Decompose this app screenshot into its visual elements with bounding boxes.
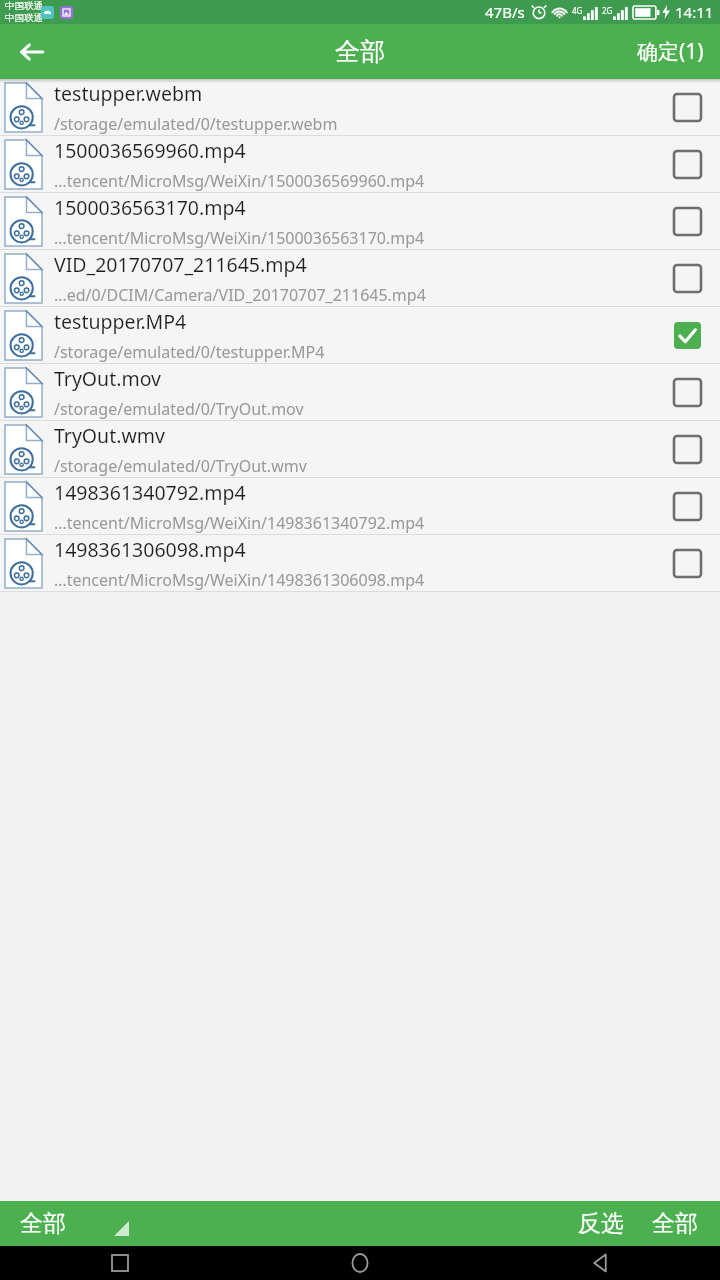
button[interactable]: 1498361306098.mp4	[0, 535, 720, 592]
button[interactable]: Not selected	[670, 375, 704, 409]
staticText: …tencent/MicroMsg/WeiXin/1498361340792.m…	[54, 512, 662, 534]
button[interactable]: testupper.webm	[0, 79, 720, 136]
button[interactable]: Back	[480, 1246, 720, 1280]
staticText: /storage/emulated/0/testupper.webm	[54, 113, 662, 135]
staticText: 反选	[578, 1209, 624, 1238]
staticText: TryOut.wmv	[54, 422, 662, 449]
staticText: 全部	[20, 1209, 66, 1238]
staticText: 1498361340792.mp4	[54, 479, 662, 506]
button[interactable]: 1500036563170.mp4	[0, 193, 720, 250]
button[interactable]: TryOut.wmv	[0, 421, 720, 478]
button[interactable]: Not selected	[670, 432, 704, 466]
staticText: TryOut.mov	[54, 365, 662, 392]
button[interactable]: Selected	[670, 318, 704, 352]
button[interactable]: 确定(1)	[621, 24, 720, 79]
staticText: 4G	[572, 5, 583, 16]
staticText: /storage/emulated/0/testupper.MP4	[54, 341, 662, 363]
button[interactable]: 全部	[0, 1201, 141, 1246]
staticText: 1498361306098.mp4	[54, 536, 662, 563]
staticText: 47B/s	[485, 2, 525, 22]
button[interactable]: Not selected	[670, 90, 704, 124]
staticText: 1500036569960.mp4	[54, 137, 662, 164]
button[interactable]: 1500036569960.mp4	[0, 136, 720, 193]
staticText: 全部	[652, 1209, 698, 1238]
button[interactable]: Not selected	[670, 489, 704, 523]
button[interactable]: Not selected	[670, 261, 704, 295]
staticText: 14:11	[675, 2, 714, 22]
button[interactable]: Not selected	[670, 147, 704, 181]
staticText: 2G	[602, 5, 613, 16]
staticText: testupper.webm	[54, 80, 662, 107]
button[interactable]: Back	[0, 24, 64, 79]
staticText: testupper.MP4	[54, 308, 662, 335]
staticText: 确定(1)	[637, 37, 704, 66]
button[interactable]: 全部	[638, 1201, 720, 1246]
staticText: VID_20170707_211645.mp4	[54, 251, 662, 278]
staticText: …tencent/MicroMsg/WeiXin/1500036569960.m…	[54, 170, 662, 192]
button[interactable]: Not selected	[670, 546, 704, 580]
staticText: …ed/0/DCIM/Camera/VID_20170707_211645.mp…	[54, 284, 662, 306]
staticText: 中国联通	[5, 0, 43, 12]
staticText: /storage/emulated/0/TryOut.wmv	[54, 455, 662, 477]
button[interactable]: Recents	[0, 1246, 240, 1280]
button[interactable]: TryOut.mov	[0, 364, 720, 421]
staticText: …tencent/MicroMsg/WeiXin/1500036563170.m…	[54, 227, 662, 249]
staticText: 全部	[335, 36, 385, 67]
button[interactable]: Home	[240, 1246, 480, 1280]
staticText: 1500036563170.mp4	[54, 194, 662, 221]
staticText: /storage/emulated/0/TryOut.mov	[54, 398, 662, 420]
button[interactable]: 1498361340792.mp4	[0, 478, 720, 535]
button[interactable]: Not selected	[670, 204, 704, 238]
button[interactable]: testupper.MP4	[0, 307, 720, 364]
staticText: 中国联通	[5, 12, 43, 24]
button[interactable]: VID_20170707_211645.mp4	[0, 250, 720, 307]
button[interactable]: 反选	[564, 1201, 638, 1246]
staticText: …tencent/MicroMsg/WeiXin/1498361306098.m…	[54, 569, 662, 591]
